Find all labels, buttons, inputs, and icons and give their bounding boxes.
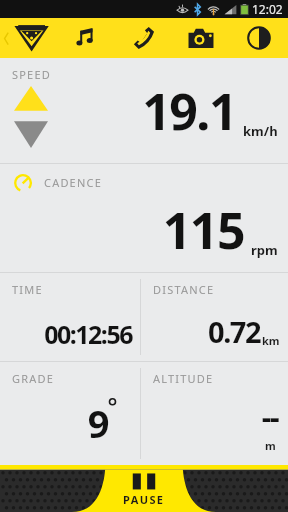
staticText: 00:12:56	[44, 317, 132, 351]
staticText: 9	[87, 397, 108, 449]
button[interactable]: Camera	[172, 18, 230, 58]
staticText: ALTITUDE	[153, 371, 214, 386]
staticText: 0.72	[208, 312, 260, 351]
staticText: GRADE	[12, 371, 55, 386]
staticText: 12:02	[252, 1, 283, 17]
staticText: PAUSE	[123, 492, 165, 507]
staticText: TIME	[12, 282, 43, 297]
staticText: km/h	[243, 122, 278, 140]
button[interactable]: Pause	[0, 465, 288, 512]
staticText: --	[261, 396, 278, 437]
staticText: m	[265, 438, 276, 453]
staticText: DISTANCE	[153, 282, 215, 297]
staticText: SPEED	[12, 67, 51, 82]
staticText: 19.1	[142, 77, 236, 145]
staticText: km	[262, 333, 280, 348]
staticText: CADENCE	[44, 175, 102, 190]
button[interactable]: Brightness	[230, 18, 288, 58]
staticText: rpm	[251, 241, 278, 259]
button[interactable]: Music	[57, 18, 114, 58]
button[interactable]: Phone	[114, 18, 172, 58]
button[interactable]: Topeak home	[0, 18, 57, 58]
staticText: 115	[162, 196, 244, 264]
